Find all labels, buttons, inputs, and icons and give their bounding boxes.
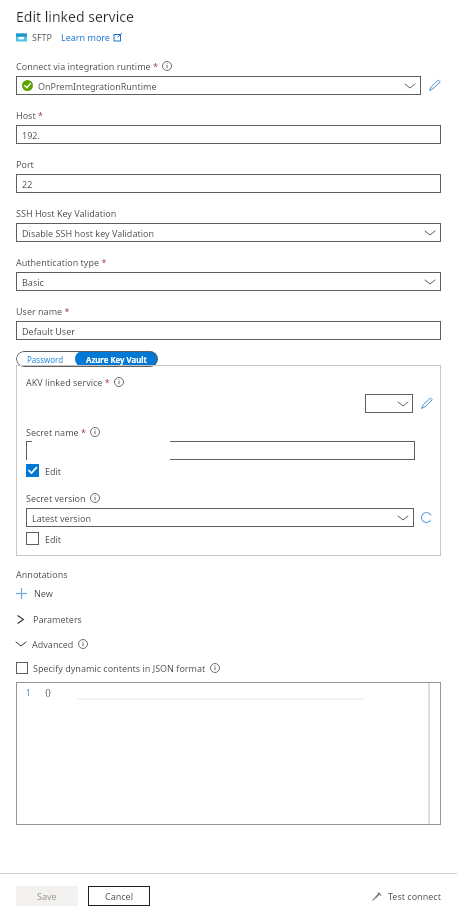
staticText: Host * bbox=[16, 109, 43, 121]
button[interactable] bbox=[365, 394, 413, 413]
staticText: Secret name * bbox=[26, 426, 86, 438]
button[interactable] bbox=[26, 441, 415, 460]
staticText: Disable SSH host key Validation bbox=[22, 227, 425, 239]
staticText: AKV linked service * bbox=[26, 376, 110, 388]
button[interactable]: Edit AKV linked service bbox=[420, 397, 433, 410]
staticText: Save bbox=[37, 890, 57, 902]
staticText: Parameters bbox=[33, 613, 82, 625]
staticText: Cancel bbox=[105, 890, 134, 902]
staticText: Password bbox=[27, 354, 64, 365]
button[interactable]: Default User bbox=[16, 321, 441, 340]
button[interactable]: Advanced bbox=[16, 638, 88, 650]
button[interactable]: Basic bbox=[16, 272, 441, 291]
staticText: Secret version bbox=[26, 492, 86, 504]
button[interactable]: Learn more bbox=[61, 31, 122, 43]
staticText: OnPremIntegrationRuntime bbox=[38, 80, 405, 92]
button[interactable]: Disable SSH host key Validation bbox=[16, 223, 441, 242]
button[interactable]: Test connect bbox=[371, 890, 441, 902]
staticText: Learn more bbox=[61, 31, 110, 43]
button[interactable]: Parameters bbox=[16, 613, 82, 625]
button[interactable]: Refresh secret versions bbox=[420, 511, 433, 524]
staticText: Edit bbox=[45, 465, 62, 477]
staticText: User name * bbox=[16, 305, 70, 317]
staticText: New bbox=[34, 587, 53, 599]
button[interactable]: 192. bbox=[16, 125, 441, 144]
staticText: Azure Key Vault bbox=[86, 354, 147, 365]
button[interactable]: Password bbox=[16, 351, 75, 367]
other: Open in new window bbox=[114, 33, 122, 41]
button[interactable]: Edit bbox=[26, 463, 62, 478]
staticText: Edit linked service bbox=[16, 7, 134, 26]
staticText: Test connect bbox=[388, 890, 441, 902]
staticText: 1 bbox=[26, 687, 31, 698]
button[interactable]: New bbox=[16, 587, 53, 599]
staticText: {} bbox=[45, 687, 52, 698]
button[interactable]: Cancel bbox=[88, 886, 150, 906]
button[interactable]: Latest version bbox=[26, 508, 414, 527]
button[interactable]: Specify dynamic contents in JSON format bbox=[16, 662, 220, 674]
button[interactable]: Azure Key Vault bbox=[75, 351, 158, 367]
staticText: Connect via integration runtime * bbox=[16, 60, 158, 72]
button[interactable]: Edit bbox=[26, 531, 62, 546]
button[interactable]: OnPremIntegrationRuntime bbox=[16, 76, 421, 95]
staticText: SFTP bbox=[32, 31, 53, 43]
staticText: Port bbox=[16, 158, 34, 170]
staticText: Edit bbox=[45, 533, 62, 545]
staticText: 192. bbox=[22, 129, 435, 141]
button[interactable]: Save bbox=[16, 886, 78, 906]
staticText: Annotations bbox=[16, 568, 68, 580]
staticText: Latest version bbox=[32, 512, 398, 524]
staticText: Default User bbox=[22, 325, 435, 337]
staticText: 22 bbox=[22, 178, 435, 190]
button[interactable]: 1 bbox=[16, 682, 441, 825]
staticText: Advanced bbox=[32, 638, 74, 650]
staticText: Specify dynamic contents in JSON format bbox=[33, 662, 206, 674]
button[interactable]: 22 bbox=[16, 174, 441, 193]
staticText: Authentication type * bbox=[16, 256, 107, 268]
button[interactable]: Edit integration runtime bbox=[428, 79, 441, 92]
staticText: Basic bbox=[22, 276, 425, 288]
staticText: SSH Host Key Validation bbox=[16, 207, 117, 219]
